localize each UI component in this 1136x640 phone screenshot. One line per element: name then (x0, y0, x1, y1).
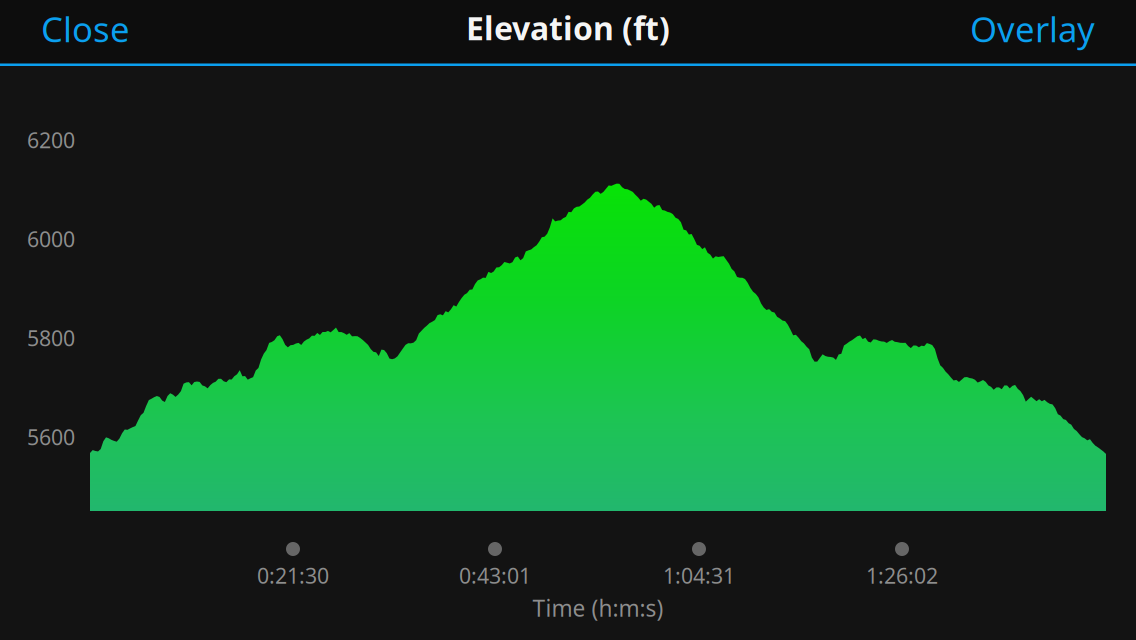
staticText: 6200 (27, 126, 75, 154)
staticText: 0:43:01 (459, 561, 531, 590)
staticText: 1:04:31 (663, 561, 735, 590)
button[interactable]: Overlay (956, 0, 1109, 60)
staticText: 5800 (27, 324, 75, 352)
staticText: 0:21:30 (257, 561, 329, 590)
staticText: Time (h:m:s) (532, 593, 663, 623)
staticText: 6000 (27, 225, 75, 253)
button[interactable]: Close (27, 0, 144, 60)
staticText: Overlay (970, 6, 1095, 52)
staticText: 1:26:02 (866, 561, 938, 590)
staticText: 5600 (27, 423, 75, 451)
staticText: Elevation (ft) (466, 6, 670, 49)
staticText: Close (41, 6, 130, 52)
